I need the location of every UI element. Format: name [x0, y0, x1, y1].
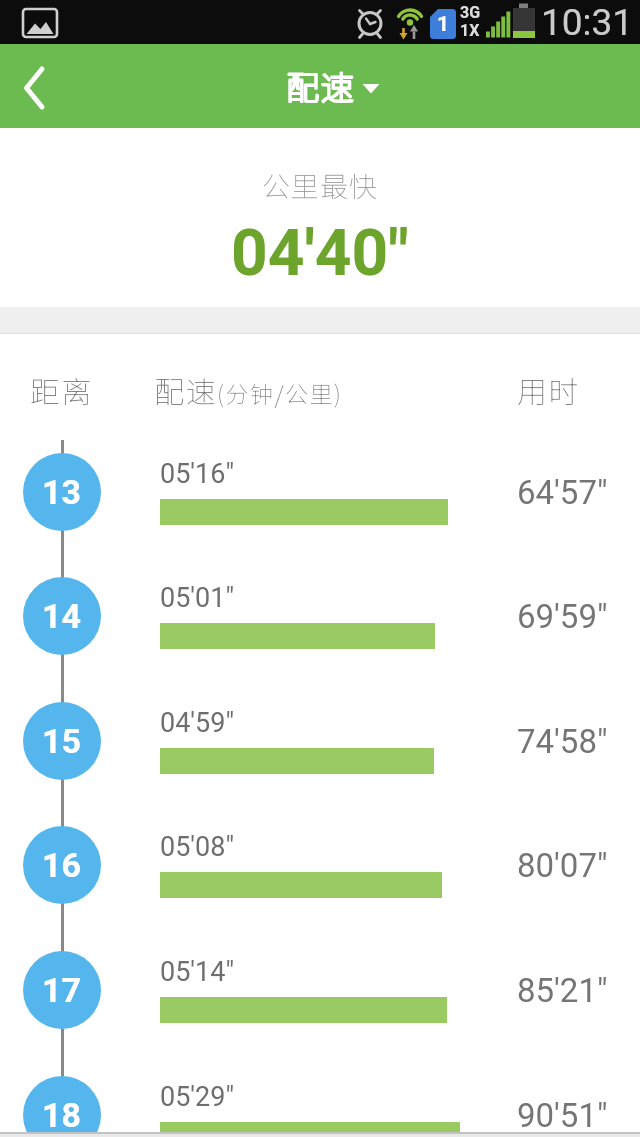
- staticText: 05'16": [160, 458, 235, 490]
- staticText: 配速: [285, 62, 355, 110]
- staticText: 14: [42, 596, 82, 636]
- staticText: 1X: [460, 21, 480, 40]
- staticText: 90'51": [517, 1096, 608, 1135]
- staticText: 3G: [460, 3, 481, 22]
- button[interactable]: 17: [0, 928, 640, 1053]
- staticText: 用时: [517, 368, 580, 408]
- staticText: 69'59": [517, 597, 608, 636]
- button[interactable]: 15: [0, 679, 640, 804]
- staticText: 04'40": [231, 216, 409, 277]
- staticText: 公里最快: [262, 165, 379, 206]
- staticText: 05'14": [160, 956, 235, 988]
- staticText: 配速(分钟/公里): [154, 368, 343, 408]
- staticText: 80'07": [517, 846, 608, 885]
- staticText: 74'58": [517, 722, 608, 761]
- button[interactable]: [250, 44, 390, 128]
- button[interactable]: 13: [0, 430, 640, 555]
- staticText: 配速: [285, 62, 355, 110]
- staticText: 05'01": [160, 582, 235, 614]
- staticText: 17: [42, 970, 82, 1010]
- staticText: 距离: [30, 368, 93, 408]
- staticText: 16: [42, 845, 82, 885]
- button[interactable]: 14: [0, 554, 640, 679]
- button[interactable]: [0, 44, 80, 128]
- staticText: 13: [42, 472, 82, 512]
- staticText: 85'21": [517, 971, 608, 1010]
- staticText: 64'57": [517, 473, 608, 512]
- staticText: 04'59": [160, 707, 235, 739]
- button[interactable]: 18: [0, 1053, 640, 1137]
- staticText: 1: [437, 12, 450, 37]
- staticText: 05'08": [160, 831, 235, 863]
- staticText: 10:31: [541, 1, 634, 44]
- button[interactable]: 16: [0, 803, 640, 928]
- staticText: 05'29": [160, 1081, 235, 1113]
- staticText: 15: [42, 721, 82, 761]
- staticText: 18: [42, 1095, 82, 1135]
